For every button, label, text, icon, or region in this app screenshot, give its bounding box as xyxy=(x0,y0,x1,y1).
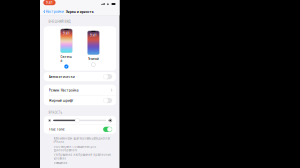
button[interactable]: 9:41 xyxy=(87,31,99,67)
staticText: Экран и яркость xyxy=(66,9,94,14)
staticText: в соответствии с освещением для единообр… xyxy=(54,145,97,152)
staticText: Темный xyxy=(88,57,99,61)
staticText: Режим Настройка xyxy=(49,88,79,92)
staticText: 9:41 xyxy=(46,0,53,5)
staticText: Настройки xyxy=(46,9,64,14)
staticText: Жирный шрифт xyxy=(49,98,74,103)
staticText: Автоматически адаптировать цвета дисплея… xyxy=(54,137,111,144)
button[interactable]: 9:41 xyxy=(60,29,72,69)
button[interactable]: Настройки xyxy=(40,8,65,15)
staticText: Автоматически xyxy=(49,74,75,79)
button[interactable]: Жирный шрифт xyxy=(44,96,116,105)
button[interactable]: Режим Настройка xyxy=(44,85,116,96)
staticText: отображения изображений в различных усло… xyxy=(54,153,111,160)
staticText: True Tone xyxy=(49,127,65,131)
staticText: освещения. xyxy=(54,161,69,165)
staticText: Светлый xyxy=(60,55,72,63)
staticText: 9:41 xyxy=(90,33,97,37)
button[interactable]: True Tone xyxy=(44,125,116,134)
button[interactable]: Автоматически xyxy=(44,72,116,81)
staticText: 9:41 xyxy=(63,31,70,35)
staticText: ЯРКОСТЬ xyxy=(49,111,63,115)
staticText: ВНЕШНИЙ ВИД xyxy=(49,20,71,23)
